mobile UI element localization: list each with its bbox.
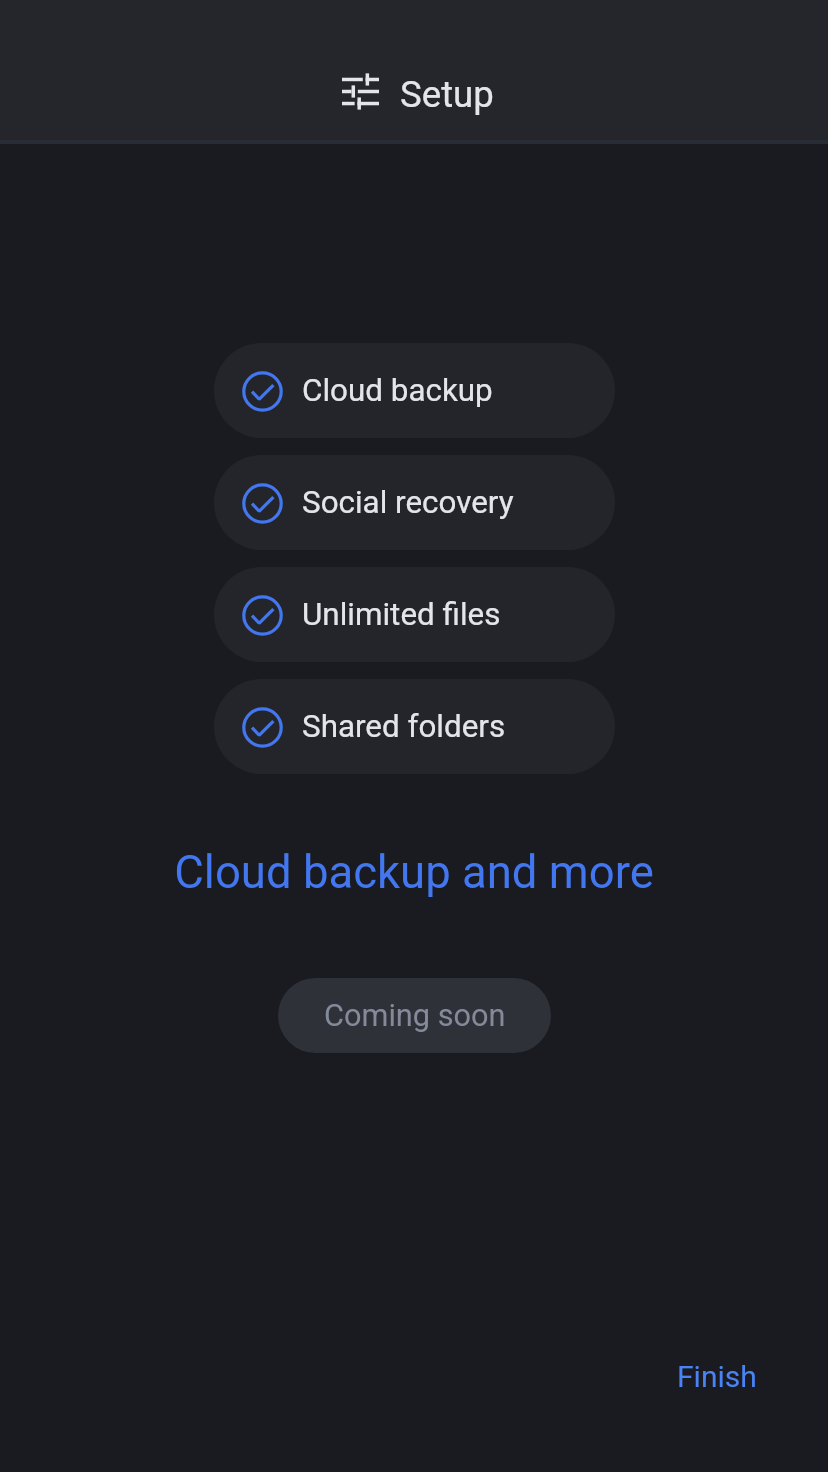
staticText: Social recovery — [302, 484, 514, 521]
staticText: Shared folders — [302, 708, 506, 745]
button[interactable]: Social recovery — [214, 455, 615, 550]
button[interactable]: Shared folders — [214, 679, 615, 774]
staticText: Finish — [677, 1359, 757, 1394]
staticText: Coming soon — [324, 998, 506, 1034]
button[interactable]: Unlimited files — [214, 567, 615, 662]
staticText: Unlimited files — [302, 596, 501, 633]
staticText: Cloud backup — [302, 372, 493, 409]
staticText: Cloud backup and more — [174, 846, 654, 899]
staticText: Setup — [400, 73, 494, 116]
button[interactable]: Cloud backup — [214, 343, 615, 438]
button[interactable]: Finish — [653, 1343, 781, 1410]
other: Tune settings — [342, 73, 379, 110]
button[interactable]: Coming soon — [278, 978, 551, 1053]
